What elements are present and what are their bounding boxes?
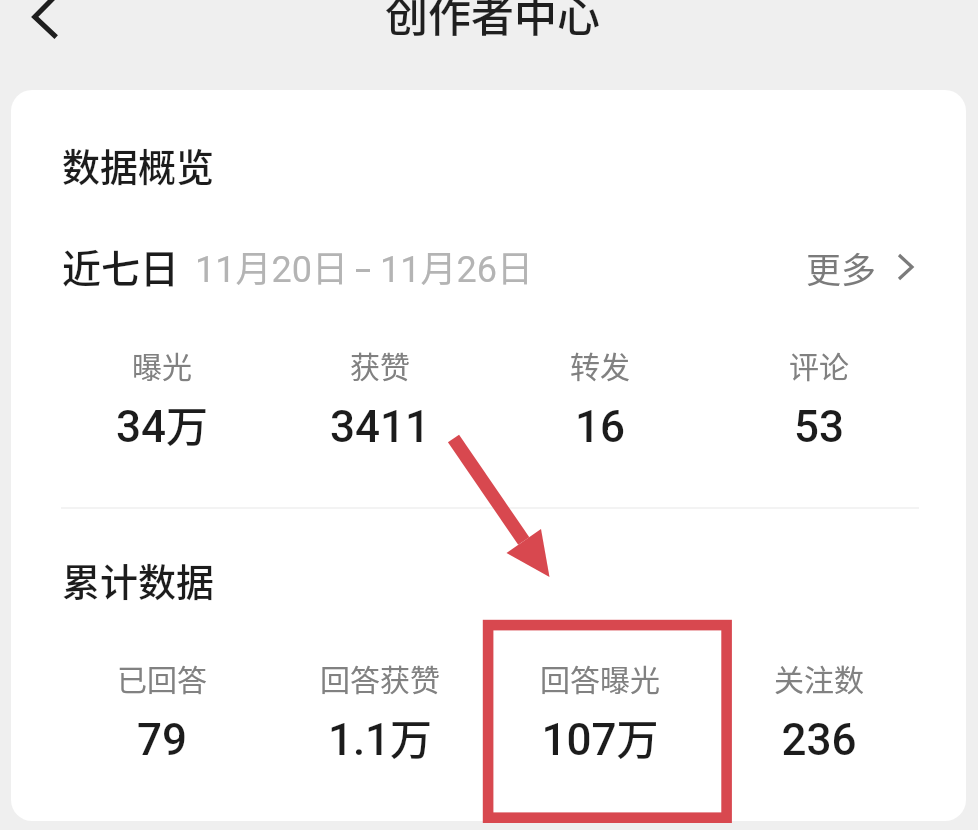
staticText: 3411 [270, 401, 490, 453]
staticText: 11月20日 [195, 240, 348, 292]
staticText: 79 [52, 714, 272, 766]
button[interactable]: 更多 [806, 237, 912, 297]
button[interactable]: 回答曝光 [490, 642, 710, 754]
staticText: 累计数据 [62, 552, 215, 607]
staticText: 回答曝光 [490, 656, 710, 699]
button[interactable]: 曝光 [52, 329, 272, 441]
staticText: 回答获赞 [270, 656, 490, 699]
staticText: 34万 [52, 393, 272, 454]
button[interactable]: 评论 [709, 329, 929, 441]
staticText: 近七日 [62, 238, 180, 294]
staticText: 53 [709, 401, 929, 453]
button[interactable]: 转发 [490, 329, 710, 441]
staticText: 16 [490, 401, 710, 453]
staticText: 已回答 [52, 656, 272, 699]
staticText: 107万 [490, 706, 710, 767]
staticText: 更多 [806, 242, 877, 293]
button[interactable]: 已回答 [52, 642, 272, 754]
staticText: 1.1万 [270, 706, 490, 767]
staticText: 关注数 [709, 656, 929, 699]
button[interactable]: 获赞 [270, 329, 490, 441]
staticText: 236 [709, 714, 929, 766]
staticText: 转发 [490, 343, 710, 386]
button[interactable]: Back [14, 0, 72, 44]
staticText: 评论 [709, 343, 929, 386]
button[interactable]: 回答获赞 [270, 642, 490, 754]
staticText: 创作者中心 [385, 0, 600, 44]
staticText: 获赞 [270, 343, 490, 386]
staticText: 曝光 [52, 343, 272, 386]
staticText: 数据概览 [62, 137, 215, 192]
staticText: 11月26日 [380, 240, 533, 292]
button[interactable]: 关注数 [709, 642, 929, 754]
